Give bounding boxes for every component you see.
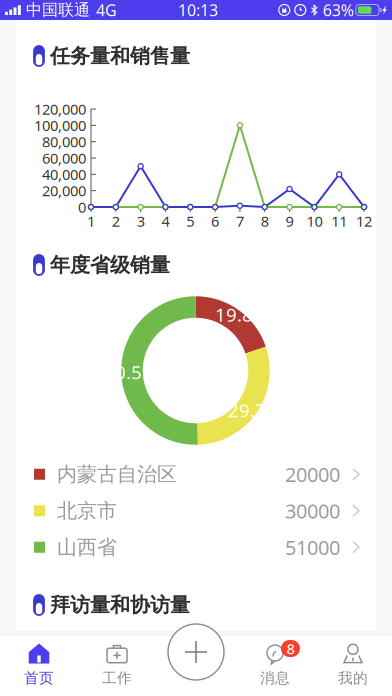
staticText: 4 — [161, 211, 169, 231]
staticText: 消息 — [260, 669, 290, 687]
button[interactable]: 山西省 — [16, 529, 376, 565]
button[interactable]: 内蒙古自治区 — [16, 456, 376, 492]
staticText: 10:13 — [178, 0, 218, 21]
staticText: 工作 — [102, 669, 132, 687]
staticText: 20000 — [285, 461, 340, 488]
staticText: 40,000 — [42, 165, 86, 184]
staticText: 11 — [331, 211, 347, 231]
staticText: 2 — [112, 211, 120, 231]
button[interactable]: 工作 — [78, 636, 156, 696]
staticText: 10 — [306, 211, 322, 231]
button[interactable]: 北京市 — [16, 492, 376, 529]
staticText: 1 — [87, 211, 95, 231]
staticText: 120,000 — [34, 99, 86, 119]
button[interactable]: 新建 — [168, 624, 224, 680]
staticText: 我的 — [338, 669, 368, 687]
staticText: 年度省级销量 — [50, 253, 170, 277]
staticText: 9 — [286, 211, 294, 231]
staticText: 100,000 — [34, 116, 86, 135]
staticText: 50.5% — [104, 360, 158, 384]
staticText: 任务量和销售量 — [50, 44, 190, 68]
staticText: 中国联通 — [26, 0, 90, 20]
staticText: 63% — [323, 0, 354, 21]
staticText: 20,000 — [42, 181, 86, 200]
staticText: 3 — [137, 211, 145, 231]
staticText: 12 — [356, 211, 372, 231]
staticText: 内蒙古自治区 — [57, 462, 177, 487]
staticText: 0 — [78, 197, 86, 217]
staticText: 5 — [186, 211, 194, 231]
staticText: 4G — [96, 0, 117, 21]
staticText: 山西省 — [57, 535, 117, 560]
staticText: 北京市 — [57, 498, 117, 523]
button[interactable]: 我的 — [314, 636, 392, 696]
staticText: 7 — [236, 211, 244, 231]
staticText: 29.7% — [228, 398, 282, 422]
staticText: 60,000 — [42, 148, 86, 168]
staticText: 51000 — [285, 534, 340, 561]
staticText: 80,000 — [42, 132, 86, 151]
staticText: 19.8% — [215, 302, 269, 327]
button[interactable]: 首页 — [0, 636, 78, 696]
staticText: 拜访量和协访量 — [50, 593, 190, 617]
staticText: 30000 — [285, 497, 340, 524]
staticText: 首页 — [24, 669, 54, 687]
button[interactable]: 8 — [236, 636, 314, 696]
staticText: 8 — [286, 639, 294, 658]
staticText: 6 — [211, 211, 219, 231]
staticText: 8 — [261, 211, 269, 231]
